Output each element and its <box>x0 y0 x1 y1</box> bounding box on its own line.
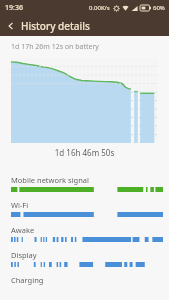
staticText: Mobile network signal <box>11 175 89 185</box>
staticText: 0.00K/s <box>89 4 110 12</box>
staticText: 1d 17h 26m 12s on battery <box>11 42 99 52</box>
staticText: 60% <box>153 4 165 12</box>
staticText: Wi-Fi <box>11 200 29 210</box>
button[interactable]: Mobile network signal <box>0 170 169 195</box>
button[interactable]: Charging <box>0 270 169 295</box>
button[interactable]: Wi-Fi <box>0 195 169 220</box>
staticText: 1d 16h 46m 50s <box>0 147 169 158</box>
staticText: History details <box>21 19 90 33</box>
button[interactable]: Back <box>0 15 21 36</box>
button[interactable]: Display <box>0 245 169 270</box>
staticText: Awake <box>11 225 35 235</box>
staticText: Display <box>11 250 37 260</box>
button[interactable]: Awake <box>0 220 169 245</box>
staticText: 19:36 <box>5 3 23 13</box>
staticText: Charging <box>11 275 44 285</box>
